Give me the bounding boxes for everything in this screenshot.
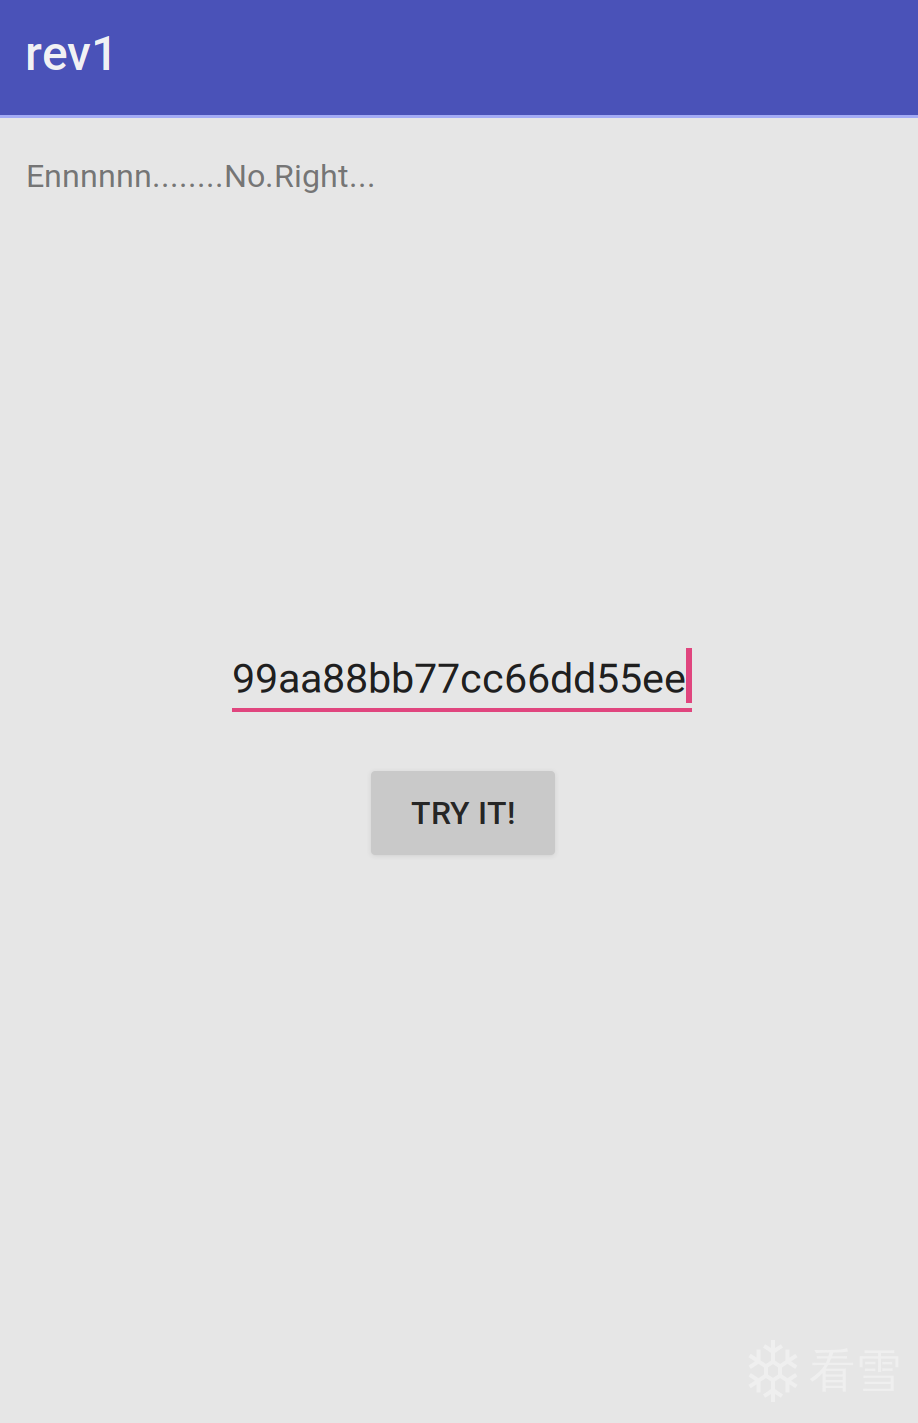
staticText: rev1: [25, 25, 118, 82]
staticText: 看雪: [809, 1342, 901, 1400]
staticText: Ennnnnn........No.Right...: [26, 157, 376, 195]
staticText: 99aa88bb77cc66dd55ee: [232, 654, 686, 703]
button[interactable]: TRY IT!: [371, 771, 555, 855]
button[interactable]: 99aa88bb77cc66dd55ee: [232, 648, 692, 712]
staticText: TRY IT!: [411, 794, 515, 832]
